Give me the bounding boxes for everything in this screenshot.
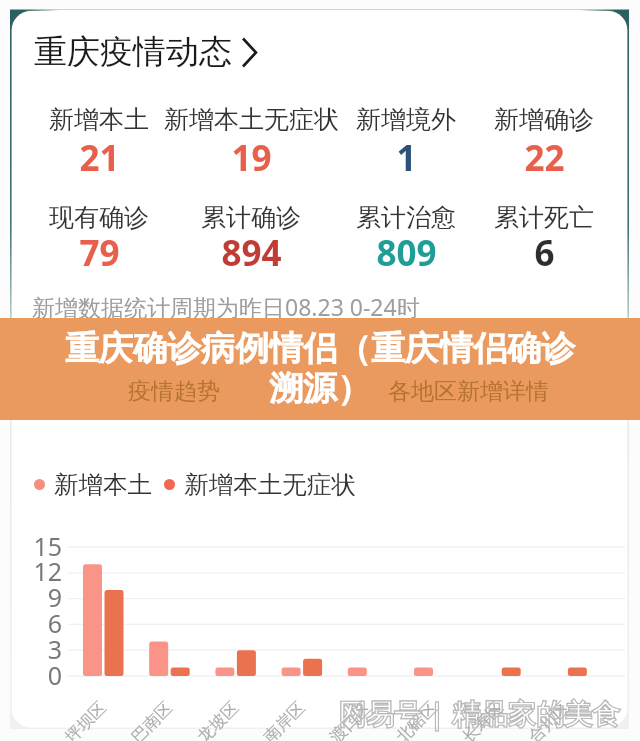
button[interactable]: 各地区新增详情	[380, 377, 556, 407]
staticText: 15	[33, 529, 62, 563]
button[interactable]: 现有确诊	[9, 202, 189, 280]
button[interactable]: 重庆疫情动态	[34, 31, 259, 73]
staticText: 累计死亡	[494, 202, 594, 233]
button[interactable]: 新增境外	[316, 104, 496, 182]
staticText: 6	[47, 606, 62, 640]
staticText: 3	[47, 632, 62, 666]
staticText: 894	[221, 229, 282, 276]
staticText: 重庆确诊病例情侣（重庆情侣确诊	[65, 327, 575, 370]
button[interactable]: 累计死亡	[454, 202, 634, 280]
staticText: 22	[524, 134, 565, 181]
button[interactable]: 累计确诊	[161, 202, 341, 280]
staticText: 新增确诊	[494, 104, 594, 135]
staticText: 疫情趋势	[128, 377, 220, 406]
staticText: 新增数据统计周期为昨日08.23 0-24时	[32, 291, 420, 322]
staticText: 9	[47, 580, 62, 614]
staticText: 溯源）	[269, 367, 371, 410]
staticText: 新增本土无症状	[184, 469, 356, 500]
staticText: 6	[534, 229, 555, 276]
staticText: 新增本土无症状	[164, 104, 339, 135]
staticText: 809	[376, 229, 437, 276]
staticText: 现有确诊	[49, 202, 149, 233]
button[interactable]: 疫情趋势	[110, 377, 238, 407]
button[interactable]: 累计治愈	[316, 202, 496, 280]
staticText: 新增本土	[49, 104, 149, 135]
staticText: 重庆疫情动态	[34, 31, 232, 73]
staticText: 新增本土	[54, 469, 152, 500]
button[interactable]: 新增本土无症状	[161, 104, 341, 182]
other: 查看更多	[241, 37, 259, 68]
staticText: 79	[79, 229, 120, 276]
staticText: 19	[231, 134, 272, 181]
staticText: 各地区新增详情	[388, 377, 549, 406]
staticText: 12	[33, 554, 62, 588]
staticText: 新增境外	[356, 104, 456, 135]
staticText: 21	[79, 134, 120, 181]
staticText: 1	[396, 134, 417, 181]
button[interactable]: 新增确诊	[454, 104, 634, 182]
staticText: 0	[47, 658, 62, 692]
staticText: 累计确诊	[201, 202, 301, 233]
staticText: 累计治愈	[356, 202, 456, 233]
button[interactable]: 新增本土	[9, 104, 189, 182]
